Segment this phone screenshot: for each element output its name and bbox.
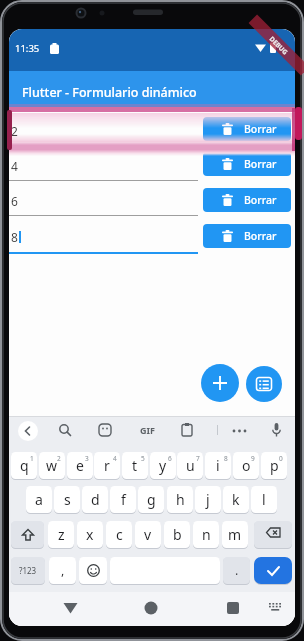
button[interactable]: k bbox=[223, 486, 249, 513]
button[interactable] bbox=[227, 602, 239, 614]
button[interactable]: Borrar bbox=[203, 152, 291, 176]
staticText: Borrar bbox=[244, 193, 277, 207]
button[interactable]: c bbox=[106, 521, 132, 548]
button[interactable] bbox=[11, 521, 44, 548]
staticText: 3 bbox=[85, 454, 89, 462]
button[interactable]: p bbox=[261, 452, 287, 479]
button[interactable]: f bbox=[110, 486, 136, 513]
staticText: i bbox=[216, 456, 220, 475]
staticText: p bbox=[270, 456, 279, 475]
button[interactable]: h bbox=[167, 486, 193, 513]
staticText: 4 bbox=[113, 454, 117, 462]
button[interactable] bbox=[182, 423, 192, 436]
button[interactable] bbox=[272, 423, 281, 437]
button[interactable] bbox=[232, 429, 248, 433]
button[interactable]: w bbox=[39, 452, 65, 479]
button[interactable]: o bbox=[233, 452, 259, 479]
staticText: 2 bbox=[57, 454, 61, 462]
staticText: Borrar bbox=[244, 157, 277, 171]
button[interactable] bbox=[246, 366, 282, 402]
staticText: v bbox=[144, 525, 152, 544]
button[interactable]: r bbox=[94, 452, 120, 479]
button[interactable]: n bbox=[193, 521, 219, 548]
button[interactable]: t bbox=[122, 452, 148, 479]
staticText: Flutter - Formulario dinámico bbox=[22, 84, 197, 101]
button[interactable]: d bbox=[82, 486, 108, 513]
button[interactable] bbox=[9, 221, 198, 253]
button[interactable]: m bbox=[222, 521, 248, 548]
staticText: 2 bbox=[11, 123, 18, 139]
staticText: Borrar bbox=[244, 122, 277, 136]
staticText: 8 bbox=[224, 454, 228, 462]
staticText: b bbox=[173, 525, 182, 544]
staticText: 1 bbox=[30, 454, 34, 462]
button[interactable] bbox=[254, 521, 292, 548]
staticText: Borrar bbox=[244, 229, 277, 243]
button[interactable]: . bbox=[223, 557, 250, 584]
staticText: w bbox=[46, 456, 58, 475]
staticText: GIF bbox=[140, 424, 155, 436]
staticText: 11:35 bbox=[15, 42, 40, 55]
button[interactable]: j bbox=[195, 486, 221, 513]
staticText: d bbox=[91, 490, 100, 509]
staticText: 4 bbox=[11, 158, 18, 174]
staticText: o bbox=[242, 456, 251, 475]
button[interactable] bbox=[18, 421, 38, 441]
button[interactable]: a bbox=[26, 486, 52, 513]
button[interactable]: Borrar bbox=[203, 117, 291, 141]
staticText: x bbox=[86, 525, 94, 544]
staticText: 9 bbox=[251, 454, 255, 462]
button[interactable]: u bbox=[177, 452, 203, 479]
staticText: z bbox=[58, 525, 65, 544]
staticText: j bbox=[206, 490, 210, 509]
button[interactable]: Borrar bbox=[203, 224, 291, 248]
button[interactable]: g bbox=[138, 486, 164, 513]
button[interactable] bbox=[9, 185, 198, 217]
button[interactable]: i bbox=[205, 452, 231, 479]
button[interactable] bbox=[144, 601, 158, 615]
staticText: h bbox=[176, 490, 185, 509]
button[interactable]: b bbox=[164, 521, 190, 548]
staticText: 0 bbox=[279, 454, 283, 462]
button[interactable] bbox=[59, 424, 72, 437]
staticText: m bbox=[228, 525, 242, 544]
button[interactable]: , bbox=[49, 557, 76, 584]
button[interactable] bbox=[254, 557, 292, 584]
staticText: 6 bbox=[168, 454, 172, 462]
button[interactable]: y bbox=[150, 452, 176, 479]
button[interactable]: q bbox=[11, 452, 37, 479]
button[interactable]: ?123 bbox=[11, 557, 45, 584]
button[interactable]: s bbox=[54, 486, 80, 513]
button[interactable] bbox=[269, 603, 282, 613]
staticText: 5 bbox=[141, 454, 145, 462]
button[interactable]: v bbox=[135, 521, 161, 548]
button[interactable] bbox=[9, 115, 198, 147]
button[interactable] bbox=[79, 557, 107, 584]
button[interactable] bbox=[99, 424, 111, 436]
button[interactable]: e bbox=[67, 452, 93, 479]
button[interactable]: z bbox=[48, 521, 74, 548]
staticText: , bbox=[61, 562, 65, 579]
staticText: f bbox=[121, 490, 126, 509]
staticText: 8 bbox=[11, 229, 18, 245]
staticText: q bbox=[20, 456, 29, 475]
staticText: u bbox=[186, 456, 195, 475]
button[interactable]: l bbox=[251, 486, 277, 513]
button[interactable]: Borrar bbox=[203, 188, 291, 212]
staticText: g bbox=[147, 490, 156, 509]
staticText: a bbox=[35, 490, 43, 509]
staticText: n bbox=[202, 525, 211, 544]
button[interactable]: x bbox=[77, 521, 103, 548]
button[interactable]: GIF bbox=[135, 423, 159, 437]
button[interactable] bbox=[201, 364, 239, 402]
staticText: c bbox=[116, 525, 123, 544]
staticText: y bbox=[159, 456, 167, 475]
staticText: t bbox=[132, 456, 138, 475]
staticText: DEBUG bbox=[268, 34, 290, 57]
button[interactable] bbox=[9, 150, 198, 182]
staticText: s bbox=[64, 490, 71, 509]
staticText: k bbox=[232, 490, 240, 509]
staticText: . bbox=[235, 562, 239, 579]
button[interactable] bbox=[63, 602, 78, 614]
